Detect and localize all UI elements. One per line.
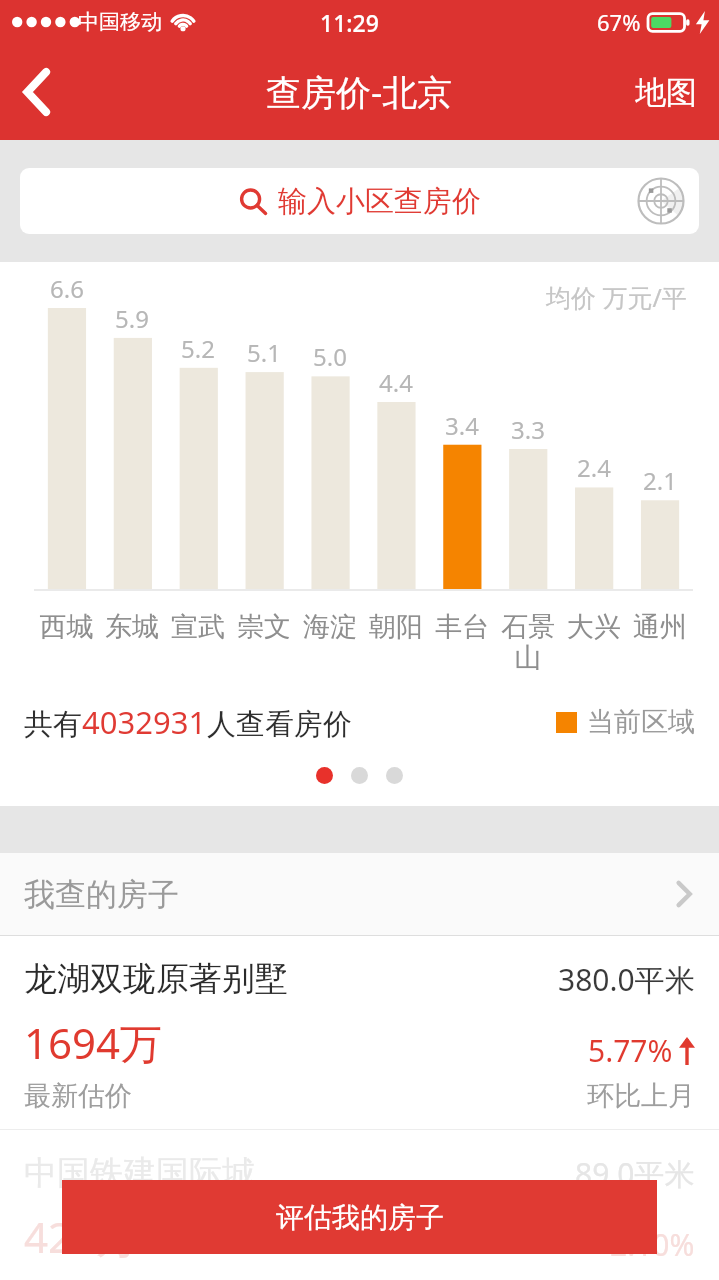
button[interactable]: 地图 [621,61,711,124]
staticText: 5.2 [181,332,215,365]
staticText: 共有 [24,706,82,743]
staticText: 地图 [635,73,697,112]
staticText: 380.0平米 [558,959,695,1000]
staticText: 2.10% [610,1224,695,1265]
staticText: 海淀 [297,610,363,644]
staticText: 均价 万元/平 [546,280,687,314]
button[interactable]: Back [0,55,74,129]
staticText: 人查看房价 [207,706,352,743]
staticText: 5.1 [247,336,281,369]
staticText: 最新估价 [24,1079,132,1113]
staticText: 东城 [99,610,165,644]
staticText: 11:29 [320,7,379,38]
staticText: 2.4 [577,451,611,484]
staticText: 5.77% [588,1030,673,1071]
staticText: 通州 [627,610,693,644]
staticText: 西城 [34,610,99,644]
staticText: 当前区域 [587,705,695,739]
button[interactable]: 输入小区查房价 [20,168,699,234]
staticText: 428万 [24,1208,139,1265]
button[interactable]: Radar nearby search [637,177,685,225]
staticText: 3.4 [445,409,479,442]
staticText: 查房价-北京 [266,68,453,116]
staticText: 中国铁建国际城 [24,1152,255,1194]
staticText: 5.9 [115,302,149,335]
staticText: 67% [597,7,641,37]
button[interactable]: 我查的房子 [0,853,719,935]
staticText: 龙湖双珑原著别墅 [24,958,288,1000]
staticText: 宣武 [165,610,231,644]
staticText: 评估我的房子 [276,1200,444,1235]
staticText: 4.4 [379,366,413,399]
staticText: 3.3 [511,413,545,446]
staticText: 1694万 [24,1014,163,1071]
staticText: 环比上月 [587,1079,695,1113]
staticText: 输入小区查房价 [278,183,481,220]
staticText: 6.6 [50,272,84,305]
staticText: 崇文 [231,610,297,644]
button[interactable]: 评估我的房子 [62,1180,657,1254]
staticText: 中国移动 [78,9,162,35]
staticText: 朝阳 [363,610,429,644]
staticText: 石景 山 [495,610,561,675]
staticText: 丰台 [429,610,495,644]
staticText: 4032931 [82,701,207,743]
staticText: 2.1 [643,464,677,497]
staticText: 89.0平米 [575,1153,695,1194]
staticText: 大兴 [561,610,627,644]
staticText: 5.0 [313,340,347,373]
button[interactable]: 龙湖双珑原著别墅 [0,936,719,1129]
staticText: 我查的房子 [24,875,179,914]
